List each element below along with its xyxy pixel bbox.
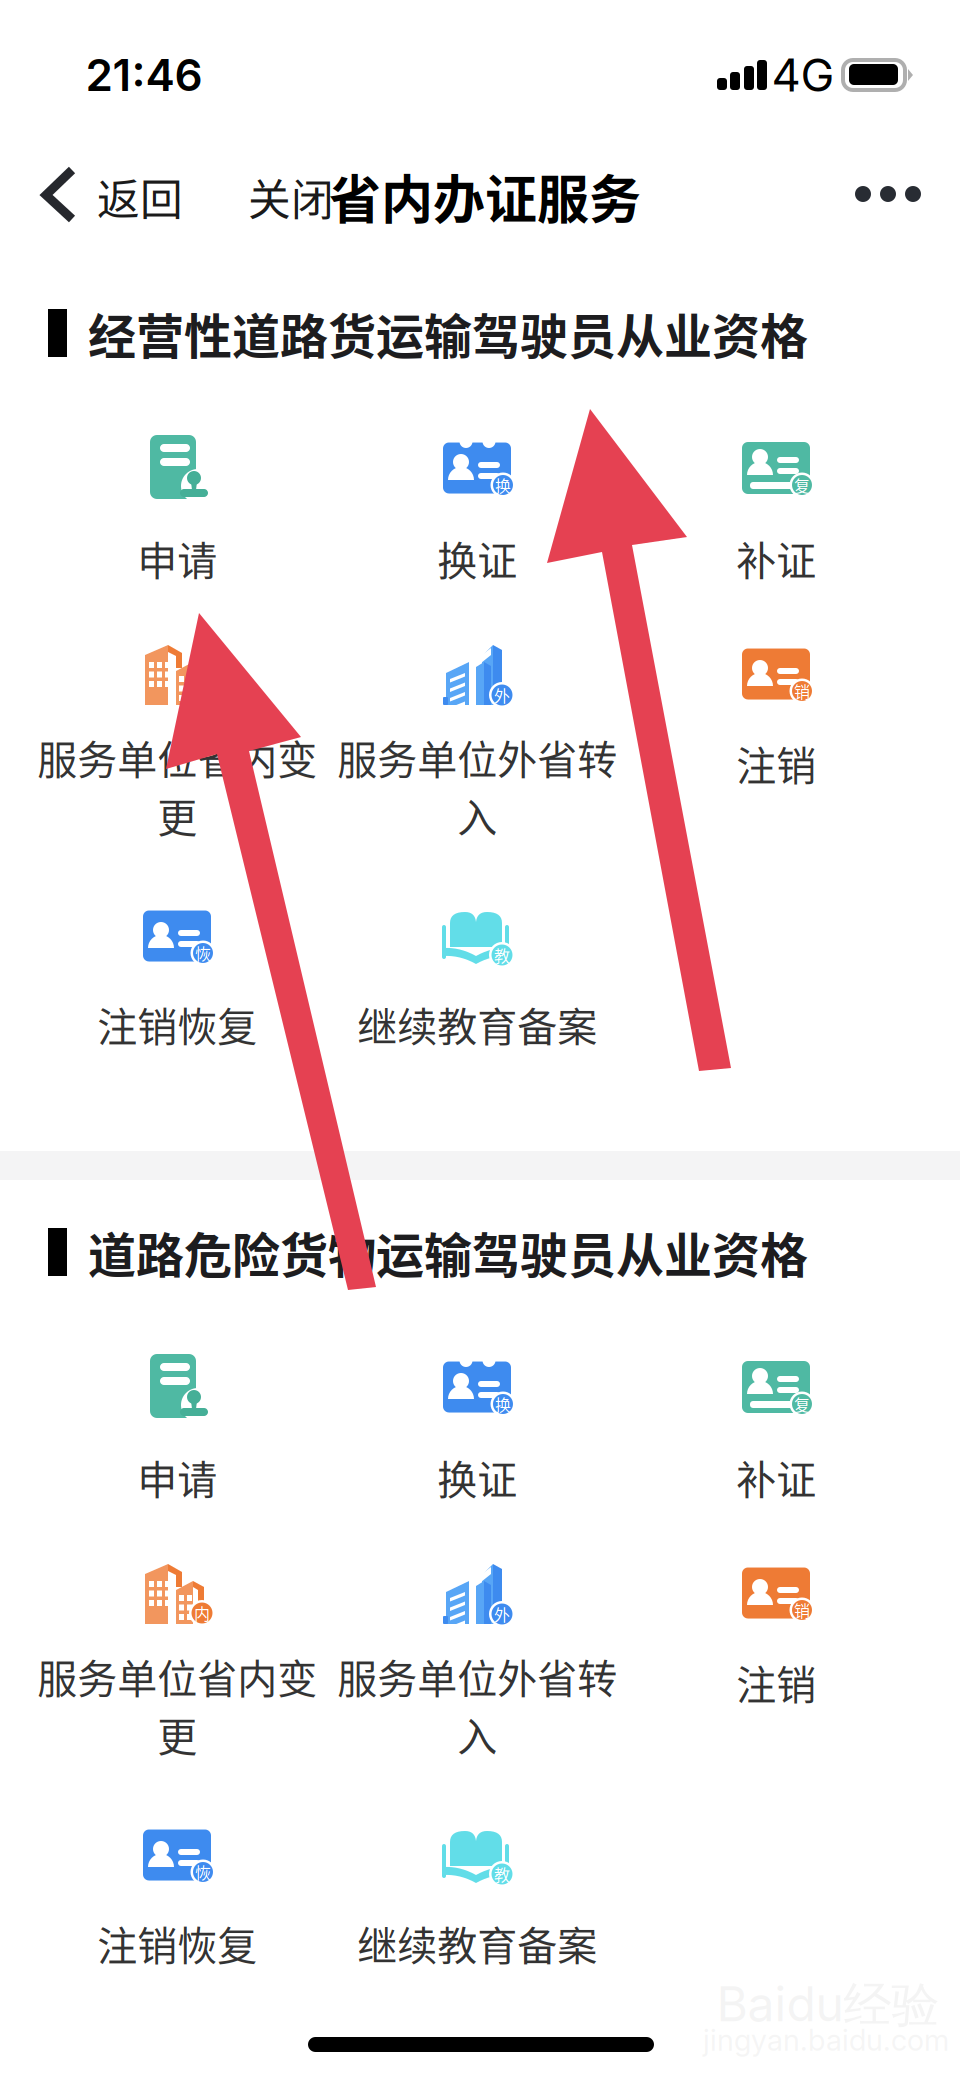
staticText: 注销 (736, 1653, 816, 1711)
button[interactable]: 申请 (0, 0, 960, 2079)
staticText: 服务单位省内变更 (37, 728, 317, 844)
button[interactable]: 注销恢复 (0, 0, 960, 2079)
staticText: 关闭 (248, 166, 334, 228)
staticText: 换证 (437, 529, 517, 587)
button[interactable]: More (0, 0, 960, 2079)
staticText: 补证 (736, 529, 816, 587)
staticText: 经营性道路货运输驾驶员从业资格 (88, 298, 808, 368)
button[interactable]: 返回 (0, 0, 960, 2079)
staticText: 外 (494, 1602, 510, 1626)
staticText: 复 (794, 1392, 810, 1416)
staticText: 注销恢复 (97, 995, 257, 1053)
button[interactable]: 申请 (0, 0, 960, 2079)
button[interactable]: 服务单位省内变更 (0, 0, 960, 2079)
button[interactable]: 服务单位省内变更 (0, 0, 960, 2079)
staticText: 注销 (736, 734, 816, 792)
staticText: 恢 (195, 1860, 211, 1884)
button[interactable]: 换证 (0, 0, 960, 2079)
staticText: 换 (495, 473, 511, 497)
button[interactable]: 注销 (0, 0, 960, 2079)
button[interactable]: 补证 (0, 0, 960, 2079)
button[interactable]: 关闭 (0, 0, 960, 2079)
button[interactable]: 服务单位外省转入 (0, 0, 960, 2079)
staticText: 服务单位外省转入 (337, 728, 617, 844)
staticText: 复 (794, 473, 810, 497)
staticText: 服务单位省内变更 (37, 1647, 317, 1763)
staticText: 申请 (137, 529, 217, 587)
staticText: Baidu经验 (716, 1975, 939, 2035)
staticText: 21:46 (85, 48, 202, 102)
staticText: 教 (494, 943, 510, 967)
staticText: jingyan.baidu.com (703, 2022, 949, 2058)
staticText: 道路危险货物运输驾驶员从业资格 (88, 1217, 808, 1287)
staticText: 教 (494, 1862, 510, 1886)
staticText: 外 (494, 683, 510, 707)
staticText: 4G (771, 48, 834, 102)
button[interactable]: 注销 (0, 0, 960, 2079)
button[interactable]: 服务单位外省转入 (0, 0, 960, 2079)
button[interactable]: 继续教育备案 (0, 0, 960, 2079)
staticText: 省内办证服务 (329, 158, 641, 234)
button[interactable]: 补证 (0, 0, 960, 2079)
button[interactable]: 注销恢复 (0, 0, 960, 2079)
staticText: 补证 (736, 1448, 816, 1506)
staticText: 服务单位外省转入 (337, 1647, 617, 1763)
staticText: 换证 (437, 1448, 517, 1506)
staticText: 继续教育备案 (357, 1914, 597, 1972)
staticText: 注销恢复 (97, 1914, 257, 1972)
staticText: 继续教育备案 (357, 995, 597, 1053)
staticText: 内 (194, 1601, 210, 1625)
staticText: 恢 (195, 941, 211, 965)
button[interactable]: 继续教育备案 (0, 0, 960, 2079)
button[interactable]: 换证 (0, 0, 960, 2079)
staticText: 销 (794, 1598, 810, 1622)
staticText: 申请 (137, 1448, 217, 1506)
staticText: 换 (495, 1392, 511, 1416)
staticText: 销 (794, 679, 810, 703)
staticText: 返回 (97, 166, 183, 228)
